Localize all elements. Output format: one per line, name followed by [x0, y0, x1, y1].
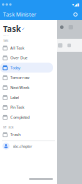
button[interactable]: Next Week: [0, 82, 57, 92]
staticText: ✓: [21, 26, 24, 31]
staticText: All Task: [10, 45, 24, 50]
button[interactable]: Pin Task: [0, 102, 57, 112]
staticText: ▾◢▮: [72, 2, 79, 7]
staticText: Tasks: [3, 39, 8, 42]
staticText: Tomorrow: [10, 75, 29, 80]
button[interactable]: Over Due: [0, 53, 57, 63]
button[interactable]: Today: [0, 63, 57, 73]
staticText: Over Due: [10, 55, 27, 60]
staticText: Label: [10, 95, 19, 100]
button[interactable]: Tomorrow: [0, 73, 57, 82]
button[interactable]: All Task: [0, 43, 57, 53]
staticText: MY TASK: [3, 126, 14, 129]
staticText: Next Week: [10, 85, 29, 90]
button[interactable]: Search: [71, 10, 80, 19]
button[interactable]: abc-chapter: [0, 141, 57, 151]
staticText: Task: [3, 23, 21, 34]
staticText: abc-chapter: [12, 143, 32, 149]
staticText: Task Minister: [3, 11, 36, 18]
button[interactable]: Trash: [0, 130, 57, 139]
staticText: Trash: [10, 132, 20, 137]
staticText: Completed: [10, 114, 29, 120]
button[interactable]: Completed: [0, 112, 57, 122]
staticText: Today: [10, 65, 20, 70]
staticText: Pin Task: [10, 105, 24, 110]
staticText: M I N I S T E R: [3, 34, 9, 36]
button[interactable]: Label: [0, 92, 57, 102]
